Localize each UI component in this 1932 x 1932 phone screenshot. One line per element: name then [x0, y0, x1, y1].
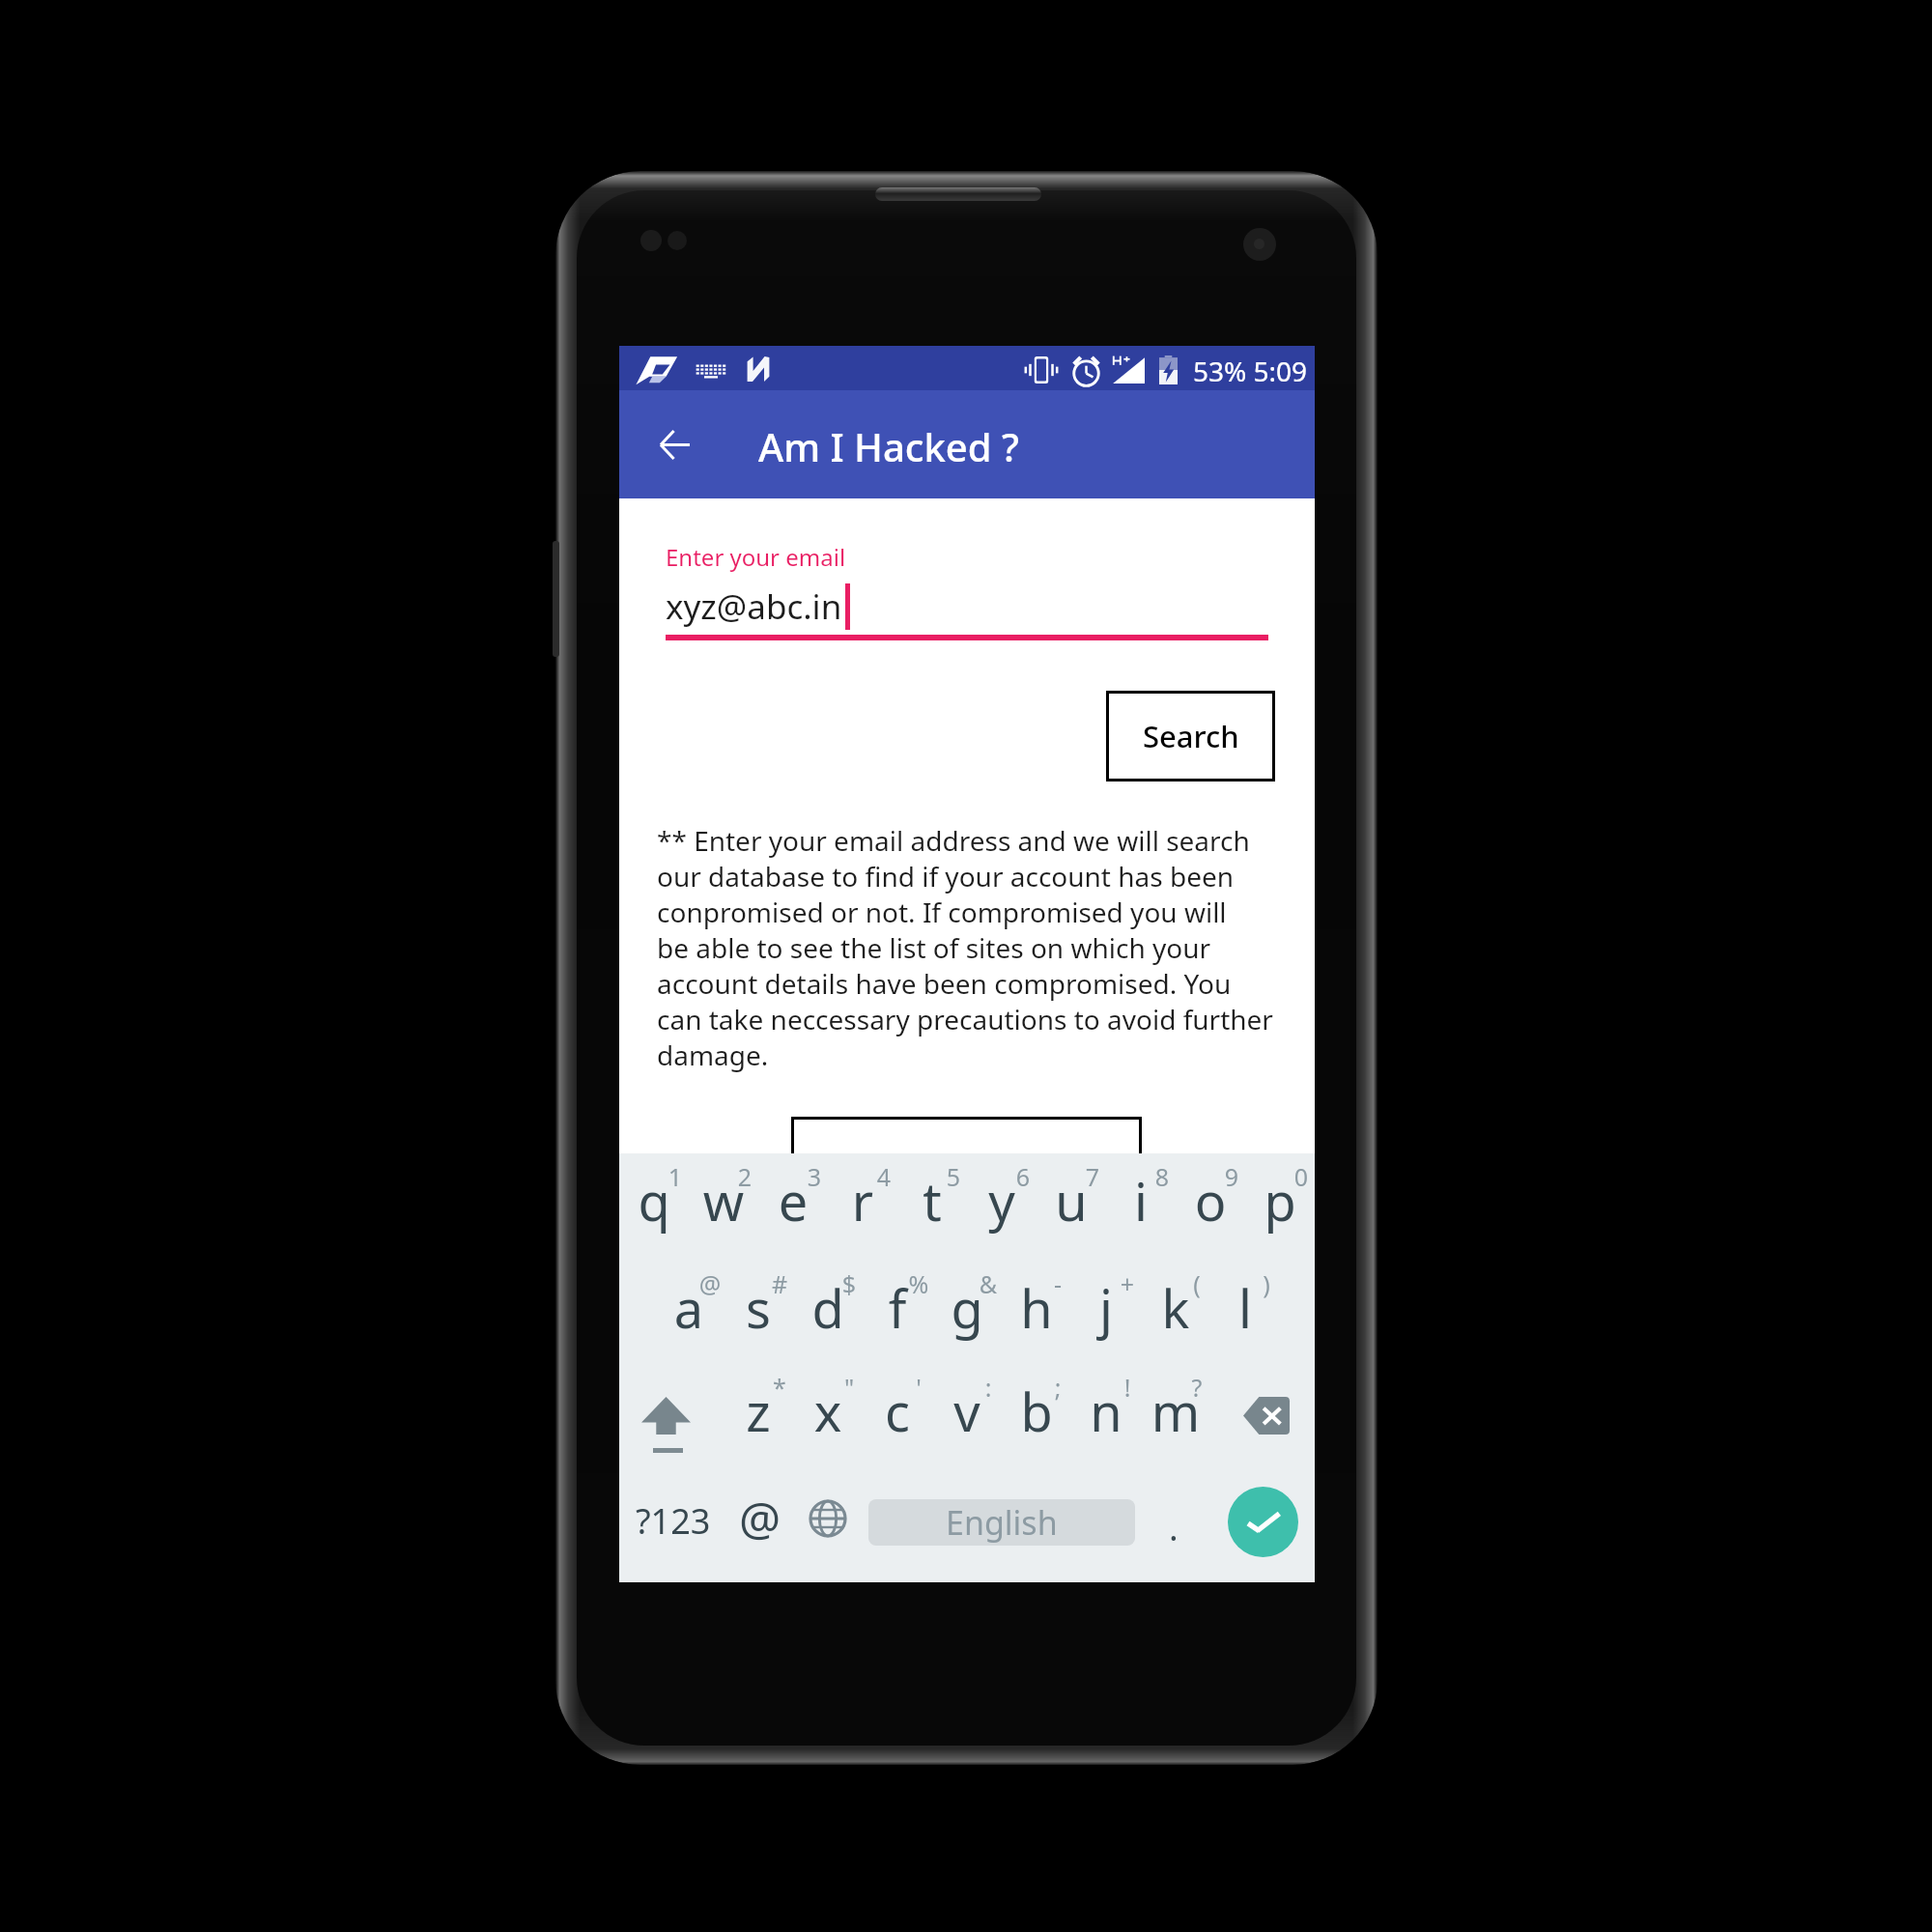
button[interactable]: Change keyboard language: [792, 1465, 864, 1572]
staticText: e: [768, 1165, 818, 1236]
button[interactable]: .: [1140, 1472, 1207, 1582]
staticText: d: [803, 1272, 853, 1344]
staticText: i: [1116, 1165, 1166, 1236]
staticText: can take neccessary precautions to avoid…: [657, 1001, 1273, 1037]
staticText: a: [664, 1272, 714, 1344]
button[interactable]: English: [868, 1499, 1135, 1546]
staticText: 7: [1073, 1160, 1112, 1193]
staticText: o: [1185, 1165, 1236, 1236]
staticText: ;: [1038, 1371, 1077, 1404]
staticText: 9: [1212, 1160, 1251, 1193]
staticText: y: [977, 1165, 1027, 1236]
staticText: u: [1046, 1165, 1096, 1236]
staticText: m: [1151, 1376, 1201, 1447]
button[interactable]: [791, 1117, 1142, 1204]
staticText: t: [907, 1165, 957, 1236]
button[interactable]: [1245, 1133, 1315, 1239]
button[interactable]: [1071, 1344, 1141, 1450]
button[interactable]: [1106, 1133, 1176, 1239]
staticText: l: [1220, 1272, 1270, 1344]
staticText: p: [1255, 1165, 1305, 1236]
staticText: n: [1081, 1376, 1131, 1447]
button[interactable]: [932, 1240, 1002, 1347]
button[interactable]: Backspace: [1210, 1351, 1315, 1458]
staticText: @: [739, 1487, 781, 1549]
button[interactable]: Search: [1106, 691, 1275, 781]
button[interactable]: [619, 1133, 689, 1239]
staticText: ": [830, 1371, 868, 1404]
staticText: English: [946, 1500, 1058, 1545]
staticText: w: [698, 1165, 749, 1236]
staticText: v: [942, 1376, 992, 1447]
button[interactable]: Shift: [619, 1344, 724, 1465]
staticText: +: [1108, 1267, 1147, 1300]
staticText: q: [629, 1165, 679, 1236]
button[interactable]: [689, 1133, 758, 1239]
staticText: -: [1038, 1267, 1077, 1300]
button[interactable]: [828, 1133, 897, 1239]
button[interactable]: [1071, 1240, 1141, 1347]
staticText: conpromised or not. If compromised you w…: [657, 894, 1227, 930]
button[interactable]: [793, 1240, 863, 1347]
button[interactable]: [967, 1133, 1037, 1239]
button[interactable]: [724, 1344, 793, 1450]
staticText: s: [733, 1272, 783, 1344]
button[interactable]: [1037, 1133, 1106, 1239]
staticText: ): [1247, 1267, 1286, 1300]
staticText: ?123: [636, 1497, 711, 1545]
staticText: 5: [934, 1160, 973, 1193]
staticText: &: [969, 1267, 1008, 1300]
staticText: 6: [1004, 1160, 1042, 1193]
staticText: !: [1108, 1371, 1147, 1404]
staticText: b: [1011, 1376, 1062, 1447]
staticText: j: [1081, 1272, 1131, 1344]
button[interactable]: [1141, 1344, 1210, 1450]
staticText: 0: [1282, 1160, 1321, 1193]
button[interactable]: [863, 1344, 932, 1450]
button[interactable]: Done: [1228, 1487, 1298, 1557]
button[interactable]: @: [727, 1464, 793, 1571]
staticText: 2: [725, 1160, 764, 1193]
staticText: *: [760, 1371, 799, 1404]
button[interactable]: [897, 1133, 967, 1239]
staticText: f: [872, 1272, 923, 1344]
button[interactable]: [758, 1133, 828, 1239]
staticText: damage.: [657, 1037, 769, 1073]
staticText: g: [942, 1272, 992, 1344]
button[interactable]: [1002, 1344, 1071, 1450]
staticText: our database to find if your account has…: [657, 858, 1235, 895]
staticText: Enter your email: [666, 541, 846, 573]
staticText: ** Enter your email address and we will …: [657, 822, 1250, 859]
staticText: z: [733, 1376, 783, 1447]
staticText: #: [760, 1267, 799, 1300]
staticText: 53% 5:09: [1193, 353, 1308, 389]
button[interactable]: [1002, 1240, 1071, 1347]
staticText: k: [1151, 1272, 1201, 1344]
button[interactable]: [724, 1240, 793, 1347]
button[interactable]: [654, 1240, 724, 1347]
staticText: xyz@abc.in: [666, 583, 842, 630]
button[interactable]: [793, 1344, 863, 1450]
staticText: account details have been compromised. Y…: [657, 965, 1232, 1002]
staticText: be able to see the list of sites on whic…: [657, 929, 1211, 966]
staticText: 4: [865, 1160, 903, 1193]
staticText: %: [899, 1267, 938, 1300]
staticText: r: [838, 1165, 888, 1236]
button[interactable]: [1176, 1133, 1245, 1239]
staticText: c: [872, 1376, 923, 1447]
staticText: 3: [795, 1160, 834, 1193]
button[interactable]: [932, 1344, 1002, 1450]
button[interactable]: ?123: [627, 1465, 720, 1576]
button[interactable]: [863, 1240, 932, 1347]
staticText: $: [830, 1267, 868, 1300]
button[interactable]: Back: [637, 407, 712, 482]
staticText: x: [803, 1376, 853, 1447]
staticText: :: [969, 1371, 1008, 1404]
button[interactable]: [1141, 1240, 1210, 1347]
staticText: h: [1011, 1272, 1062, 1344]
button[interactable]: [1210, 1240, 1280, 1347]
staticText: 1: [656, 1160, 695, 1193]
staticText: .: [1169, 1504, 1179, 1551]
staticText: (: [1178, 1267, 1216, 1300]
staticText: ': [899, 1371, 938, 1404]
